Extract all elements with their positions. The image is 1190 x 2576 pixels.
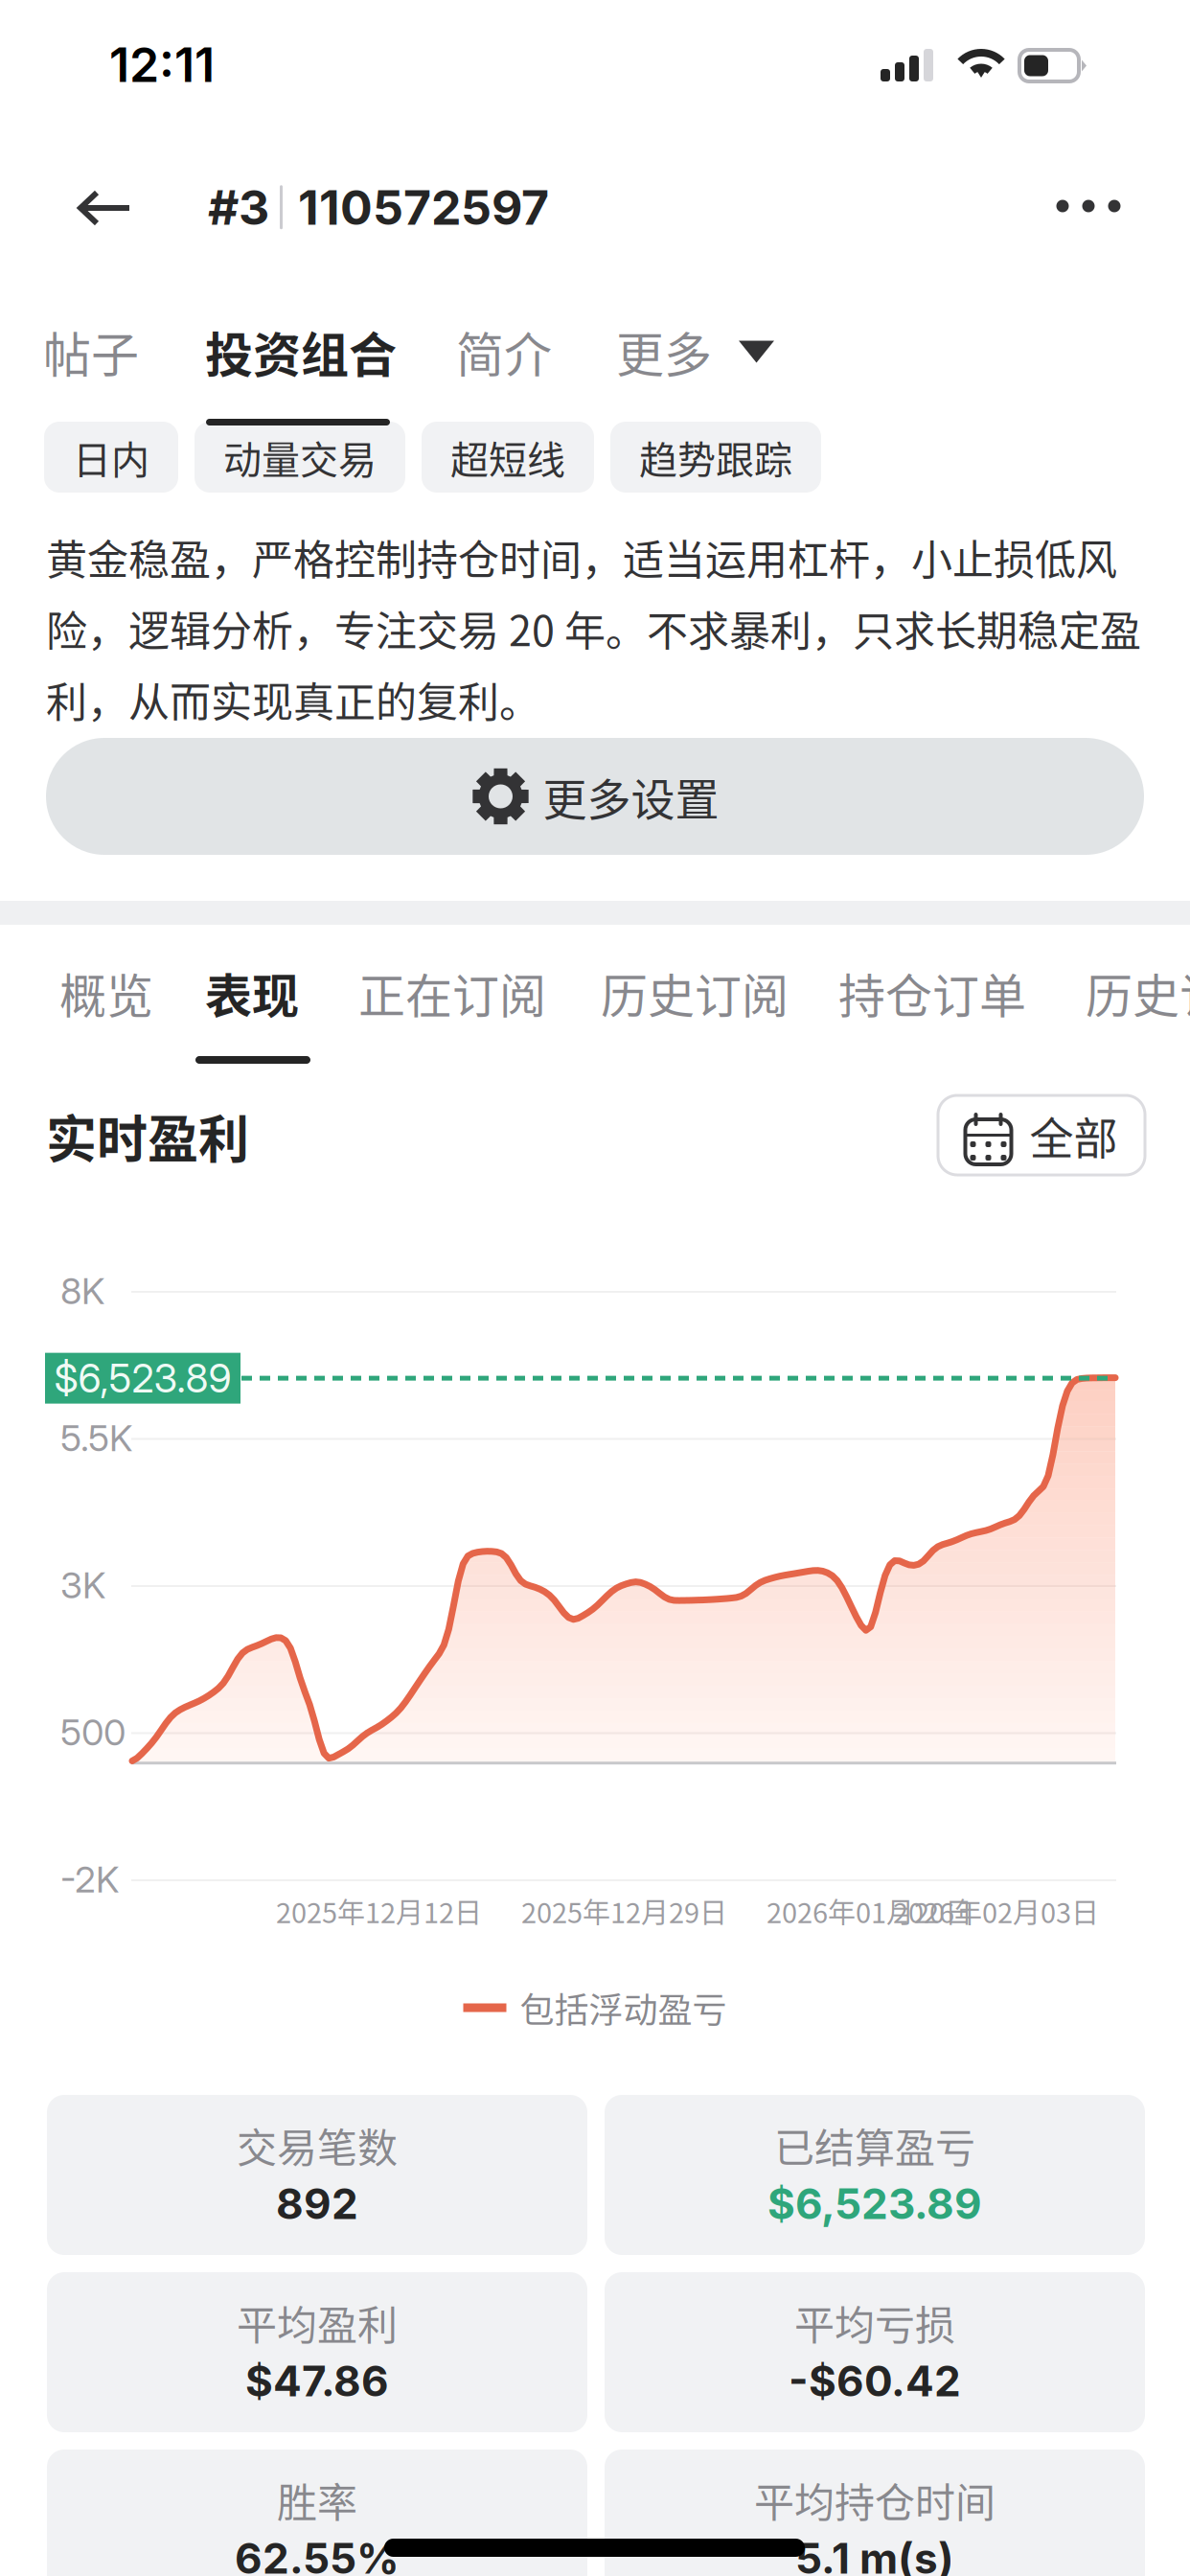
button[interactable]: 持仓订单 [838, 946, 1026, 1040]
staticText: 历史订阅 [601, 959, 789, 1027]
staticText: 2025年12月29日 [521, 1891, 727, 1931]
staticText: 62.55% [235, 2533, 400, 2576]
staticText: #3 [208, 178, 269, 236]
button[interactable]: 历史订阅 [601, 946, 789, 1040]
staticText: 2025年12月12日 [276, 1891, 482, 1931]
button[interactable]: 更多 [616, 302, 774, 402]
button[interactable]: 正在订阅 [358, 946, 546, 1040]
button[interactable]: 简介 [456, 302, 552, 402]
staticText: 正在订阅 [358, 959, 546, 1027]
staticText: 2026年01月20日 [767, 1891, 973, 1931]
staticText: $6,523.89 [767, 2178, 982, 2229]
staticText: 历史订 [1086, 959, 1190, 1027]
staticText: 交易笔数 [237, 2116, 398, 2174]
button[interactable]: 更多设置 [46, 738, 1144, 855]
staticText: $47.86 [245, 2355, 389, 2406]
staticText: 简介 [456, 317, 552, 386]
staticText: 3K [60, 1563, 105, 1607]
button[interactable]: More options [1013, 154, 1164, 258]
button[interactable]: 动量交易 [195, 422, 405, 493]
staticText: 表现 [205, 959, 299, 1027]
staticText: 110572597 [298, 178, 549, 236]
staticText: 实时盈利 [46, 1099, 249, 1173]
staticText: 趋势跟踪 [639, 429, 792, 485]
staticText: 日内 [73, 429, 149, 485]
staticText: 12:11 [109, 35, 215, 93]
staticText: 包括浮动盈亏 [520, 1983, 727, 2033]
staticText: 已结算盈亏 [774, 2116, 975, 2174]
staticText: 胜率 [277, 2471, 357, 2529]
button[interactable]: 帖子 [43, 302, 139, 402]
staticText: 8K [60, 1269, 104, 1313]
button[interactable]: Back [48, 156, 161, 260]
button[interactable]: 超短线 [422, 422, 594, 493]
staticText: $6,523.89 [54, 1354, 231, 1402]
staticText: 概览 [59, 959, 153, 1027]
staticText: 更多 [616, 317, 712, 386]
staticText: 5.5K [60, 1416, 132, 1460]
button[interactable]: 投资组合 [205, 302, 397, 402]
button[interactable]: 趋势跟踪 [610, 422, 821, 493]
staticText: 黄金稳盈，严格控制持仓时间，适当运用杠杆，小止损低风险，逻辑分析，专注交易 20… [46, 527, 1141, 729]
button[interactable]: 全部 [938, 1095, 1145, 1175]
staticText: 超短线 [450, 429, 565, 485]
staticText: 投资组合 [205, 317, 397, 386]
staticText: 平均盈利 [237, 2293, 398, 2352]
button[interactable]: 日内 [44, 422, 178, 493]
staticText: 892 [276, 2178, 358, 2229]
staticText: 5.1 m(s) [795, 2533, 954, 2576]
staticText: 帖子 [43, 317, 139, 386]
staticText: 平均持仓时间 [754, 2471, 995, 2529]
staticText: 动量交易 [223, 429, 377, 485]
staticText: -2K [60, 1857, 119, 1901]
staticText: 2026年02月03日 [893, 1891, 1099, 1931]
staticText: 持仓订单 [838, 959, 1026, 1027]
staticText: 全部 [1030, 1103, 1118, 1167]
button[interactable]: 表现 [205, 946, 299, 1040]
staticText: 更多设置 [543, 764, 719, 828]
button[interactable]: 概览 [59, 946, 153, 1040]
staticText: 平均亏损 [794, 2293, 955, 2352]
staticText: -$60.42 [789, 2355, 961, 2406]
staticText: 500 [60, 1710, 126, 1754]
